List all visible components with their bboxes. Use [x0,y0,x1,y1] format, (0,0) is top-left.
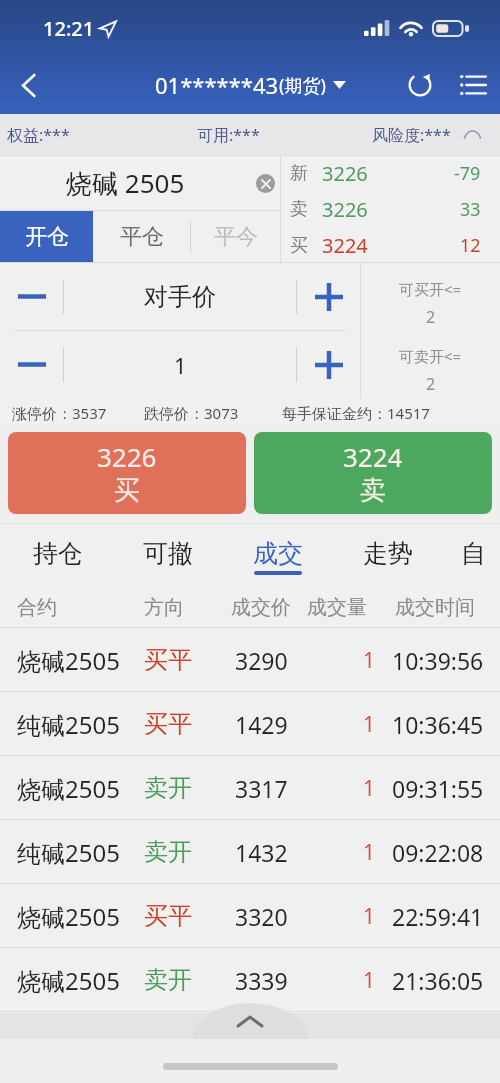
button[interactable]: Decrease [0,331,63,398]
button[interactable]: Expand panel [192,1003,308,1039]
button[interactable]: Increase [297,331,360,398]
button[interactable]: 烧碱2505 [0,628,500,692]
staticText: 3226 [97,439,157,474]
button[interactable]: 可撤 [113,523,223,583]
staticText: 1 [363,966,376,995]
staticText: 烧碱2505 [17,772,120,805]
button[interactable]: 平仓 [93,211,190,263]
staticText: 09:22:08 [392,837,484,868]
staticText: 3226 [322,160,368,187]
staticText: 平今 [214,223,258,251]
staticText: 卖开 [144,837,192,867]
staticText: 3317 [235,773,288,804]
staticText: 买 [290,234,308,257]
staticText: 买平 [144,709,192,739]
button[interactable]: 自 [443,523,500,583]
staticText: 买 [114,474,140,507]
staticText: 3224 [322,232,368,259]
staticText: 33 [460,197,481,222]
staticText: 买平 [144,645,192,675]
staticText: 成交 [253,538,303,569]
staticText: 可用:*** [197,124,260,146]
staticText: 2 [426,306,436,328]
button[interactable]: 成交 [223,523,333,583]
staticText: 涨停价：3537 [12,403,107,423]
staticText: 合约 [17,595,57,620]
staticText: 可撤 [143,538,193,569]
button[interactable]: 3224 [254,432,492,514]
staticText: 烧碱2505 [17,900,120,933]
button[interactable]: 01******43 [155,70,346,100]
button[interactable]: 烧碱2505 [0,884,500,948]
staticText: 12 [460,233,481,258]
staticText: 每手保证金约：14517 [282,403,430,423]
staticText: 3224 [343,439,403,474]
staticText: 平仓 [120,223,164,251]
button[interactable]: 烧碱2505 [0,756,500,820]
staticText: 21:36:05 [392,965,484,996]
staticText: 对手价 [144,282,216,312]
staticText: 可买开<= [399,279,462,299]
staticText: 走势 [363,538,413,569]
button[interactable]: Clear [251,169,279,197]
button[interactable]: 走势 [333,523,443,583]
staticText: 1432 [235,837,288,868]
button[interactable]: 纯碱2505 [0,692,500,756]
staticText: 持仓 [33,538,83,569]
staticText: 跌停价：3073 [144,403,239,423]
button[interactable]: Increase [297,263,360,330]
staticText: 1 [363,710,376,739]
staticText: 10:36:45 [392,709,484,740]
button[interactable]: 烧碱2505 [0,948,500,1012]
button[interactable]: 开仓 [0,211,93,263]
button[interactable]: 纯碱2505 [0,820,500,884]
staticText: 成交时间 [395,595,475,620]
staticText: 卖开 [144,965,192,995]
staticText: 1 [174,350,187,380]
staticText: 卖开 [144,773,192,803]
staticText: 3290 [235,645,288,676]
staticText: 3320 [235,901,288,932]
button[interactable]: Back [0,56,56,114]
staticText: 1 [363,902,376,931]
staticText: 新 [290,162,308,185]
staticText: 1 [363,838,376,867]
staticText: 01******43 [155,70,279,100]
button[interactable]: 平今 [191,211,280,263]
staticText: 22:59:41 [392,901,484,932]
staticText: (期货) [279,73,326,98]
staticText: 烧碱 2505 [66,165,185,201]
staticText: 10:39:56 [392,645,484,676]
staticText: 烧碱2505 [17,964,120,997]
staticText: 纯碱2505 [17,708,120,741]
staticText: 1 [363,646,376,675]
staticText: 成交量 [307,595,367,620]
staticText: 风险度:*** [372,124,451,146]
button[interactable]: 持仓 [3,523,113,583]
button[interactable]: Refresh [394,56,446,114]
staticText: 1429 [235,709,288,740]
staticText: 买平 [144,901,192,931]
staticText: 纯碱2505 [17,836,120,869]
staticText: 卖 [360,474,386,507]
staticText: 权益:*** [7,124,70,146]
staticText: 2 [426,373,436,395]
staticText: 自 [461,538,486,569]
staticText: -79 [454,161,481,186]
button[interactable]: Menu [446,56,500,114]
button[interactable]: 3226 [8,432,246,514]
staticText: 1 [363,774,376,803]
button[interactable]: Decrease [0,263,63,330]
staticText: 09:31:55 [392,773,484,804]
staticText: 12:21 [43,15,95,42]
staticText: 3339 [235,965,288,996]
staticText: 方向 [144,595,184,620]
staticText: 开仓 [25,223,69,251]
staticText: 3226 [322,196,368,223]
staticText: 烧碱2505 [17,644,120,677]
staticText: 卖 [290,198,308,221]
staticText: 可卖开<= [399,346,462,366]
staticText: 成交价 [231,595,291,620]
